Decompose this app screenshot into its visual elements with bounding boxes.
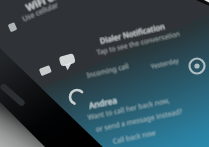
button[interactable]: Notification bbox=[40, 50, 80, 78]
button[interactable]: Call bbox=[129, 87, 189, 127]
